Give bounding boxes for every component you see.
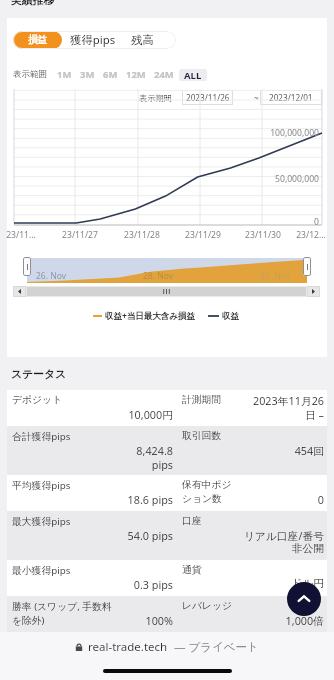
- staticText: 23/11/27: [58, 229, 102, 241]
- staticText: 10,000円: [128, 407, 173, 421]
- staticText: 1,000倍: [285, 613, 324, 627]
- button[interactable]: [26, 286, 307, 297]
- staticText: 通貨: [182, 564, 202, 576]
- staticText: 23/11/28: [120, 229, 164, 241]
- staticText: 23/11…: [0, 229, 43, 241]
- button[interactable]: 6M: [99, 68, 122, 81]
- button[interactable]: ALL: [179, 69, 207, 81]
- button[interactable]: Scroll left: [13, 286, 26, 297]
- button[interactable]: 残高: [123, 31, 161, 49]
- staticText: 3M: [80, 68, 95, 81]
- staticText: 50,000,000: [219, 173, 319, 185]
- staticText: 合計獲得pips: [12, 430, 71, 443]
- button[interactable]: Range handle: [23, 257, 31, 276]
- staticText: — プライベート: [174, 639, 259, 655]
- staticText: 獲得pips: [70, 32, 116, 48]
- staticText: 6M: [103, 68, 118, 81]
- staticText: 24M: [154, 68, 174, 81]
- staticText: 最大獲得pips: [12, 515, 71, 528]
- staticText: 最小獲得pips: [12, 564, 71, 577]
- staticText: 収益+当日最大含み損益: [105, 310, 196, 322]
- staticText: 0: [219, 216, 319, 228]
- button[interactable]: 2023/12/01: [260, 90, 322, 105]
- button[interactable]: 獲得pips: [62, 31, 123, 49]
- staticText: ALL: [184, 69, 202, 81]
- button[interactable]: Range handle: [303, 257, 311, 276]
- button[interactable]: 3M: [76, 68, 99, 81]
- staticText: 2023年11月26: [253, 393, 324, 407]
- staticText: 30. Nov: [260, 270, 290, 282]
- staticText: 54.0 pips: [127, 528, 173, 542]
- staticText: 収益: [222, 311, 239, 322]
- staticText: 日 –: [304, 407, 324, 421]
- button[interactable]: 24M: [150, 68, 178, 81]
- staticText: 口座: [182, 515, 202, 527]
- staticText: 23/11/30: [241, 229, 285, 241]
- staticText: 100,000,000: [219, 127, 319, 139]
- staticText: 2023/12/01: [269, 92, 313, 103]
- staticText: 0: [317, 492, 324, 506]
- button[interactable]: 損益: [13, 31, 62, 49]
- staticText: ション数: [182, 493, 222, 505]
- staticText: ステータス: [11, 368, 66, 382]
- staticText: real-trade.tech: [88, 639, 168, 655]
- staticText: 0.3 pips: [133, 577, 173, 591]
- staticText: 26. Nov: [36, 270, 66, 282]
- staticText: 取引回数: [182, 430, 222, 442]
- staticText: ~: [254, 92, 259, 103]
- staticText: 18.6 pips: [127, 492, 173, 506]
- staticText: 平均獲得pips: [12, 479, 71, 492]
- staticText: 実績推移: [11, 0, 55, 8]
- staticText: 454回: [294, 443, 324, 457]
- staticText: 残高: [131, 33, 154, 47]
- staticText: 保有中ポジ: [182, 479, 232, 491]
- staticText: 損益: [28, 34, 48, 46]
- staticText: 12M: [126, 68, 146, 81]
- staticText: 23/11/29: [181, 229, 225, 241]
- staticText: 計測期間: [182, 394, 222, 406]
- button[interactable]: 12M: [122, 68, 150, 81]
- staticText: を除外): [12, 614, 45, 627]
- button[interactable]: Scroll to top: [287, 582, 321, 616]
- staticText: 勝率 (スワップ, 手数料: [12, 600, 112, 613]
- staticText: 表示範囲: [13, 69, 47, 80]
- button[interactable]: 2023/11/26: [182, 90, 233, 105]
- staticText: レバレッジ: [182, 600, 233, 612]
- staticText: 100%: [145, 613, 173, 627]
- staticText: 1M: [57, 68, 72, 81]
- button[interactable]: 1M: [53, 68, 76, 81]
- staticText: リアル口座/番号: [243, 528, 324, 542]
- staticText: pips: [151, 457, 173, 471]
- staticText: 2023/11/26: [186, 92, 230, 103]
- staticText: 8,424.8: [136, 443, 173, 457]
- staticText: 表示期間: [139, 93, 172, 103]
- staticText: ドル円: [291, 577, 324, 591]
- staticText: 28. Nov: [143, 270, 173, 282]
- staticText: 23/12…: [289, 229, 333, 241]
- staticText: デポジット: [12, 394, 63, 406]
- staticText: 非公開: [291, 542, 324, 556]
- button[interactable]: Scroll right: [307, 286, 320, 297]
